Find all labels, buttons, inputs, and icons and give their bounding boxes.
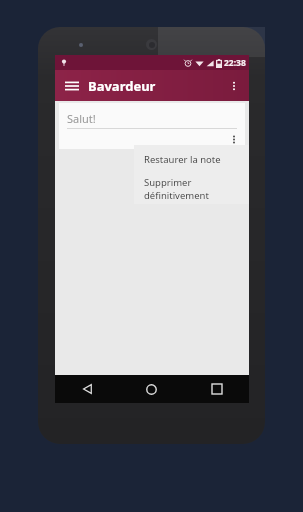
button[interactable]: Note options <box>226 131 242 147</box>
button[interactable]: Recent apps <box>184 375 249 403</box>
button[interactable]: Back <box>55 375 119 403</box>
button[interactable]: Open navigation drawer <box>61 75 83 97</box>
button[interactable]: Home <box>119 375 184 403</box>
staticText: Bavardeur <box>88 77 156 95</box>
staticText: Supprimer définitivement <box>144 176 249 202</box>
staticText: Restaurer la note <box>144 153 221 166</box>
button[interactable]: Restaurer la note <box>134 145 249 174</box>
button[interactable]: Salut! <box>59 103 245 149</box>
staticText: 22:38 <box>224 57 246 69</box>
staticText: Salut! <box>67 111 96 126</box>
button[interactable]: More options <box>223 75 245 97</box>
button[interactable]: Supprimer définitivement <box>134 174 249 204</box>
